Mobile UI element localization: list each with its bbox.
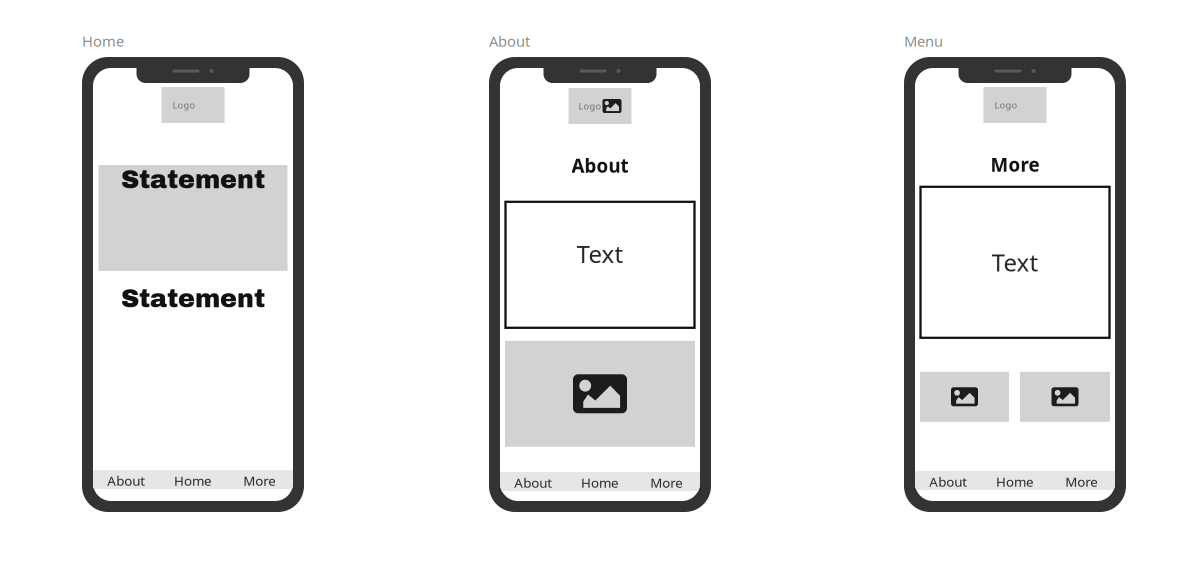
button[interactable]: Image placeholder	[505, 341, 695, 447]
staticText: Statement	[121, 285, 265, 313]
staticText: About	[489, 31, 530, 51]
staticText: Home	[174, 472, 212, 489]
button[interactable]: Logo	[161, 87, 224, 123]
button[interactable]: Logo	[568, 88, 631, 124]
button[interactable]: Image one	[920, 372, 1009, 422]
button[interactable]: Home	[160, 470, 226, 489]
staticText: About	[571, 153, 628, 178]
button[interactable]: More	[1048, 471, 1115, 490]
staticText: Logo	[172, 99, 195, 111]
button[interactable]: More	[226, 470, 293, 489]
button[interactable]: Home	[982, 471, 1048, 490]
staticText: Text	[576, 238, 623, 270]
staticText: More	[650, 474, 683, 491]
button[interactable]: Image two	[1020, 372, 1110, 422]
staticText: More	[990, 152, 1039, 177]
staticText: More	[243, 472, 276, 489]
staticText: About	[107, 472, 145, 489]
staticText: Home	[581, 474, 619, 491]
staticText: More	[1065, 473, 1098, 490]
button[interactable]: About	[915, 471, 982, 490]
staticText: Home	[82, 31, 124, 51]
button[interactable]: About	[93, 470, 160, 489]
staticText: About	[929, 473, 967, 490]
staticText: Logo	[578, 100, 601, 112]
button[interactable]: About	[500, 472, 567, 491]
button[interactable]: Logo	[983, 87, 1046, 123]
staticText: Logo	[994, 99, 1017, 111]
staticText: About	[514, 474, 552, 491]
button[interactable]: Home	[567, 472, 633, 491]
staticText: Menu	[904, 31, 943, 51]
button[interactable]: More	[633, 472, 700, 491]
staticText: Text	[991, 246, 1038, 278]
staticText: Statement	[121, 166, 265, 194]
staticText: Home	[996, 473, 1034, 490]
